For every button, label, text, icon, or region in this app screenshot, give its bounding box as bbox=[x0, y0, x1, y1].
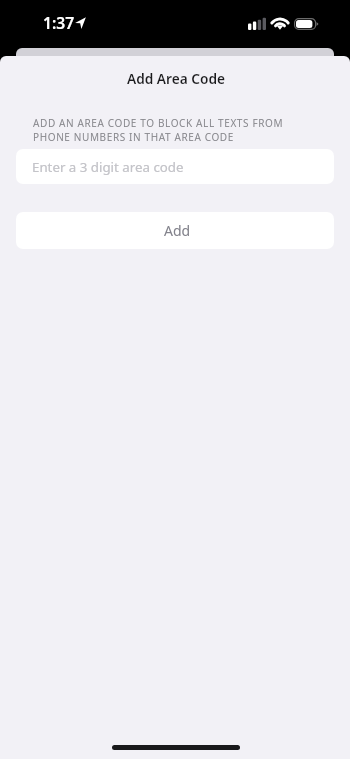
staticText: ADD AN AREA CODE TO BLOCK ALL TEXTS FROM… bbox=[33, 116, 350, 144]
staticText: 1:37 bbox=[43, 12, 75, 33]
other: Cellular signal bbox=[248, 17, 266, 30]
button[interactable]: Enter a 3 digit area code bbox=[16, 149, 334, 184]
button[interactable]: Add bbox=[16, 212, 334, 249]
other: Wi-Fi bbox=[270, 17, 290, 30]
staticText: Add bbox=[164, 221, 191, 240]
other: Location services active bbox=[75, 17, 86, 29]
other: Battery bbox=[294, 18, 319, 30]
staticText: Add Area Code bbox=[1, 69, 350, 88]
staticText: Enter a 3 digit area code bbox=[32, 158, 184, 176]
